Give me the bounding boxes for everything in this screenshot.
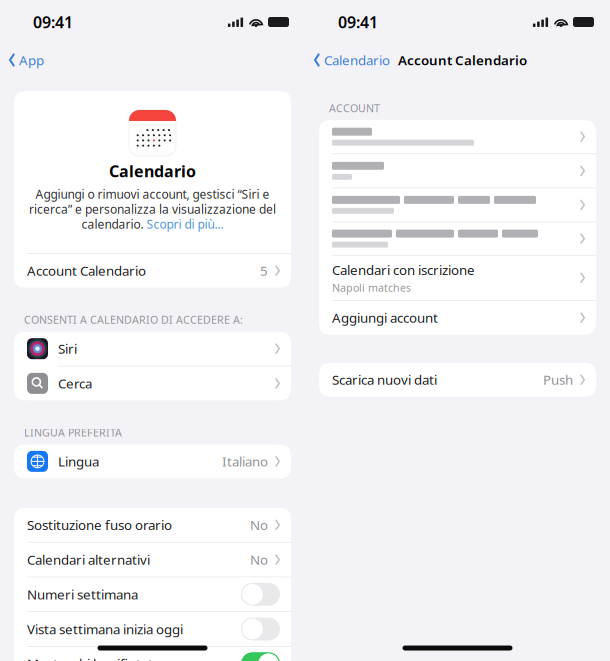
staticText: No <box>250 516 268 534</box>
staticText: Account Calendario <box>398 51 527 69</box>
staticText: ricerca” e personalizza la visualizzazio… <box>29 201 276 217</box>
button[interactable]: Scopri di più... <box>146 216 223 232</box>
staticText: Sostituzione fuso orario <box>27 516 172 534</box>
button[interactable]: Numeri settimana <box>14 577 291 611</box>
button[interactable] <box>319 120 596 153</box>
staticText: Calendari con iscrizione <box>332 261 475 279</box>
staticText: 09:41 <box>33 11 73 33</box>
staticText: Cerca <box>58 374 92 392</box>
staticText: ACCOUNT <box>329 101 380 115</box>
staticText: Siri <box>58 340 77 357</box>
button[interactable]: Account Calendario <box>14 254 291 288</box>
staticText: calendario. <box>81 216 146 232</box>
button[interactable]: Lingua <box>14 444 291 478</box>
button[interactable]: Calendari con iscrizione <box>319 256 596 300</box>
staticText: Vista settimana inizia oggi <box>27 620 183 638</box>
button[interactable] <box>319 154 596 187</box>
staticText: Scarica nuovi dati <box>332 371 437 388</box>
button[interactable]: Siri <box>14 332 291 366</box>
staticText: Account Calendario <box>27 262 146 279</box>
staticText: Lingua <box>58 452 99 470</box>
staticText: App <box>19 51 44 69</box>
staticText: No <box>250 551 268 568</box>
button[interactable]: Aggiungi account <box>319 301 596 335</box>
button[interactable]: Cerca <box>14 366 291 400</box>
staticText: Scopri di più... <box>146 216 223 232</box>
staticText: Aggiungi o rimuovi account, gestisci “Si… <box>35 186 269 202</box>
button[interactable]: Vista settimana inizia oggi <box>14 612 291 646</box>
button[interactable]: Scarica nuovi dati <box>319 363 596 397</box>
staticText: Napoli matches <box>332 281 411 295</box>
staticText: Aggiungi account <box>332 309 438 326</box>
staticText: Numeri settimana <box>27 585 138 603</box>
button[interactable] <box>319 222 596 255</box>
staticText: LINGUA PREFERITA <box>24 425 122 439</box>
staticText: 5 <box>260 262 268 279</box>
staticText: Mostra chi ha rifiutato <box>27 655 161 661</box>
staticText: Calendario <box>324 51 390 69</box>
staticText: Push <box>543 371 573 388</box>
button[interactable]: Calendari alternativi <box>14 543 291 577</box>
button[interactable]: Calendario <box>305 44 610 76</box>
button[interactable]: App <box>0 44 305 76</box>
staticText: 09:41 <box>338 11 378 33</box>
staticText: Italiano <box>222 452 268 470</box>
button[interactable]: Sostituzione fuso orario <box>14 508 291 542</box>
staticText: Calendari alternativi <box>27 551 150 568</box>
button[interactable] <box>319 188 596 222</box>
button[interactable]: Mostra chi ha rifiutato <box>14 647 291 661</box>
staticText: CONSENTI A CALENDARIO DI ACCEDERE A: <box>24 313 243 327</box>
staticText: Calendario <box>109 160 196 182</box>
